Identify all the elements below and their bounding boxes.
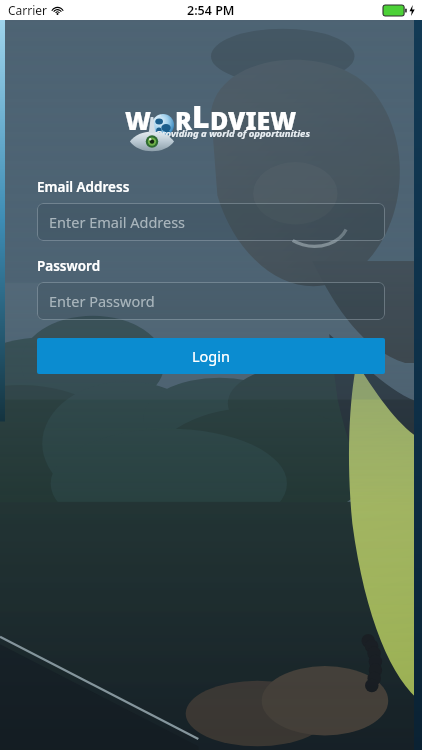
button[interactable]: Enter Email Address xyxy=(37,203,385,241)
staticText: DVIEW xyxy=(210,103,297,137)
button[interactable]: Login xyxy=(37,338,385,374)
staticText: Password xyxy=(37,257,101,275)
button[interactable]: Enter Password xyxy=(37,282,385,320)
staticText: Login xyxy=(192,346,230,366)
staticText: Providing a world of opportunities xyxy=(156,127,310,140)
staticText: Carrier xyxy=(8,2,48,18)
staticText: Email Address xyxy=(37,178,130,196)
staticText: Enter Email Address xyxy=(49,212,186,232)
staticText: Enter Password xyxy=(49,291,155,311)
staticText: R xyxy=(175,103,192,137)
staticText: 2:54 PM xyxy=(187,2,235,19)
staticText: W xyxy=(125,103,151,137)
staticText: L xyxy=(192,96,210,137)
